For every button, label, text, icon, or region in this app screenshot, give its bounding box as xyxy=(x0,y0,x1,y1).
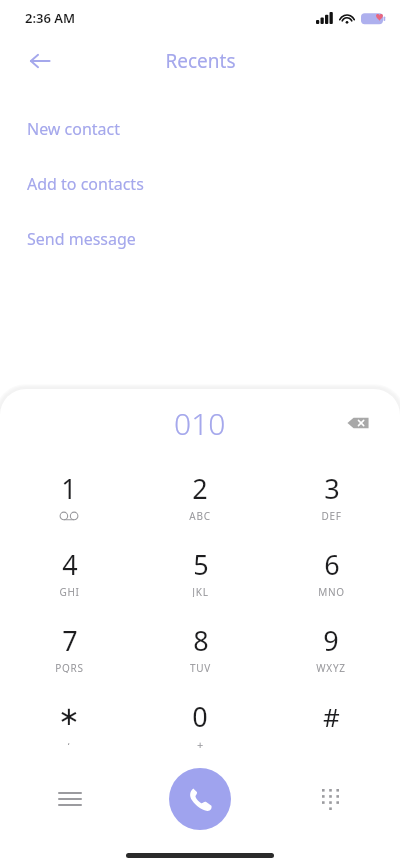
staticText: JKL xyxy=(192,585,209,597)
button[interactable]: Call log xyxy=(48,777,92,821)
button[interactable]: 1 xyxy=(7,457,131,533)
button[interactable]: Add to contacts xyxy=(0,156,400,211)
staticText: Recents xyxy=(165,48,236,74)
button[interactable]: Send message xyxy=(0,211,400,266)
staticText: 8 xyxy=(193,622,209,659)
staticText: 0 xyxy=(192,698,208,735)
staticText: 9 xyxy=(323,622,339,659)
staticText: + xyxy=(197,737,204,749)
button[interactable]: # xyxy=(269,685,393,761)
staticText: GHI xyxy=(59,585,80,597)
staticText: 5 xyxy=(193,546,209,583)
staticText: 7 xyxy=(62,622,78,659)
staticText: 3 xyxy=(324,470,340,507)
staticText: 4 xyxy=(62,546,78,583)
staticText: 2 xyxy=(192,470,208,507)
button[interactable]: 6 xyxy=(269,533,393,609)
staticText: ABC xyxy=(189,509,211,521)
staticText: , xyxy=(67,733,71,745)
staticText: 6 xyxy=(324,546,340,583)
staticText: 2:36 AM xyxy=(25,9,76,27)
staticText: Send message xyxy=(27,228,136,250)
staticText: # xyxy=(323,699,340,734)
button[interactable]: 7 xyxy=(7,609,131,685)
staticText: DEF xyxy=(321,509,342,521)
staticText: PQRS xyxy=(55,661,84,673)
staticText: MNO xyxy=(318,585,345,597)
button[interactable]: 8 xyxy=(138,609,262,685)
button[interactable]: New contact xyxy=(0,101,400,156)
button[interactable]: 3 xyxy=(269,457,393,533)
button[interactable]: 5 xyxy=(138,533,262,609)
button[interactable]: 9 xyxy=(269,609,393,685)
button[interactable]: Keypad xyxy=(308,777,352,821)
button[interactable]: Backspace xyxy=(336,401,380,445)
staticText: ∗ xyxy=(58,701,80,731)
staticText: New contact xyxy=(27,118,121,140)
button[interactable]: ∗ xyxy=(7,685,131,761)
button[interactable]: 4 xyxy=(7,533,131,609)
staticText: Add to contacts xyxy=(27,173,144,195)
button[interactable]: Call xyxy=(169,768,231,830)
staticText: WXYZ xyxy=(316,661,346,673)
staticText: 1 xyxy=(61,470,77,507)
staticText: TUV xyxy=(190,661,211,673)
button[interactable]: 0 xyxy=(138,685,262,761)
button[interactable]: 2 xyxy=(138,457,262,533)
staticText: 010 xyxy=(174,403,226,444)
button[interactable]: Back xyxy=(18,40,62,82)
